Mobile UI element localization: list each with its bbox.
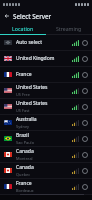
staticText: US Fast xyxy=(16,108,30,113)
button[interactable]: France xyxy=(0,179,92,194)
button[interactable]: Select Canada xyxy=(82,168,88,174)
staticText: Canada xyxy=(16,164,34,171)
button[interactable]: France xyxy=(0,67,92,82)
button[interactable]: Select France xyxy=(82,72,88,78)
button[interactable]: United States xyxy=(0,99,92,114)
button[interactable]: Brazil xyxy=(0,131,92,146)
button[interactable]: Select Canada xyxy=(82,152,88,158)
staticText: Auto select xyxy=(16,39,42,46)
staticText: United Kingdom xyxy=(16,55,55,62)
staticText: France xyxy=(16,71,32,78)
staticText: Streaming xyxy=(56,25,82,32)
button[interactable]: Streaming xyxy=(46,23,92,34)
button[interactable]: Select Australia xyxy=(82,120,88,126)
staticText: Canada xyxy=(16,148,34,155)
button[interactable]: United States xyxy=(0,83,92,98)
staticText: Quebec xyxy=(16,172,31,177)
staticText: France xyxy=(16,180,32,187)
button[interactable]: Location xyxy=(0,23,46,34)
button[interactable]: Canada xyxy=(0,147,92,162)
staticText: US Free xyxy=(16,92,30,97)
button[interactable]: Select United Kingdom xyxy=(82,56,88,62)
staticText: Sao Paulo xyxy=(16,140,34,145)
button[interactable]: United Kingdom xyxy=(0,51,92,66)
button[interactable]: Back xyxy=(0,9,13,23)
staticText: United States xyxy=(16,84,48,91)
button[interactable]: Select Auto select xyxy=(82,40,88,46)
button[interactable]: Auto select xyxy=(0,35,92,50)
button[interactable]: Select Brazil xyxy=(82,136,88,142)
button[interactable]: Select France xyxy=(82,184,88,190)
staticText: Montreal xyxy=(16,156,33,161)
staticText: United States xyxy=(16,100,48,107)
button[interactable]: Australia xyxy=(0,115,92,130)
staticText: Sydney xyxy=(16,124,30,129)
button[interactable]: Select United States xyxy=(82,104,88,110)
staticText: Location xyxy=(12,25,34,32)
staticText: Select Server xyxy=(13,12,52,20)
button[interactable]: Canada xyxy=(0,163,92,178)
staticText: Bordeaux xyxy=(16,188,34,193)
staticText: Brazil xyxy=(16,132,29,139)
button[interactable]: Select United States xyxy=(82,88,88,94)
staticText: Australia xyxy=(16,116,37,123)
